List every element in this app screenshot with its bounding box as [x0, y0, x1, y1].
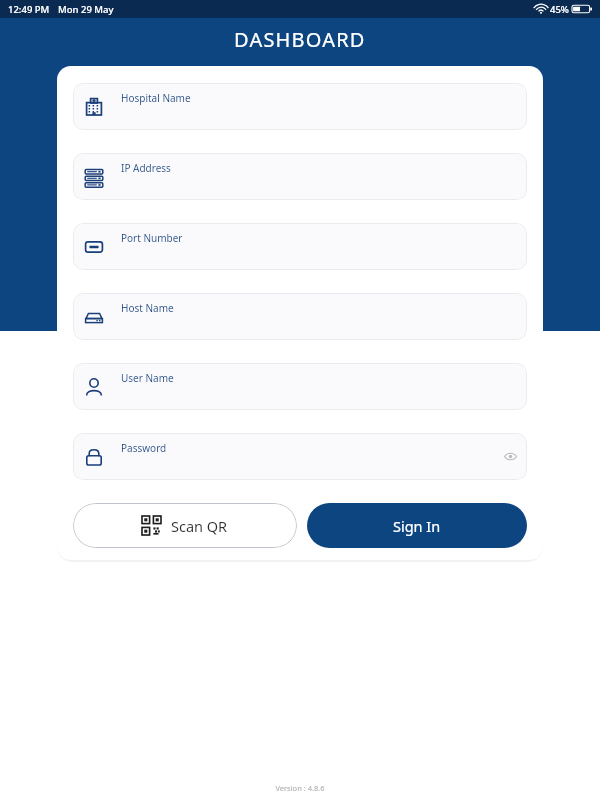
staticText: User Name — [121, 371, 174, 385]
staticText: IP Address — [121, 161, 171, 175]
staticText: Password — [121, 441, 167, 455]
button[interactable]: Scan QR — [73, 503, 297, 548]
staticText: Sign In — [393, 516, 441, 536]
staticText: 12:49 PM — [8, 3, 50, 16]
button[interactable]: Sign In — [307, 503, 527, 548]
button[interactable]: Show password — [504, 452, 517, 461]
button[interactable]: Password — [73, 433, 527, 480]
staticText: Scan QR — [171, 516, 228, 536]
staticText: Mon 29 May — [58, 3, 114, 16]
staticText: Host Name — [121, 301, 174, 315]
button[interactable]: Host Name — [73, 293, 527, 340]
button[interactable]: User Name — [73, 363, 527, 410]
button[interactable]: Port Number — [73, 223, 527, 270]
staticText: Version : 4.8.6 — [275, 783, 325, 793]
button[interactable]: Hospital Name — [73, 83, 527, 130]
staticText: 45% — [550, 3, 569, 16]
button[interactable]: IP Address — [73, 153, 527, 200]
staticText: Port Number — [121, 231, 183, 245]
staticText: Hospital Name — [121, 91, 191, 105]
staticText: DASHBOARD — [234, 26, 366, 53]
